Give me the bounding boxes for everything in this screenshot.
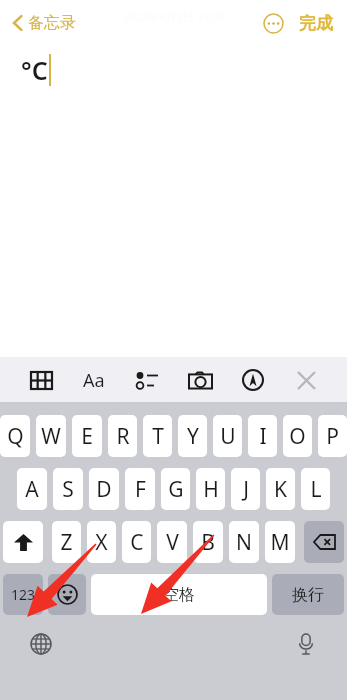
button[interactable]: J bbox=[231, 468, 260, 510]
button[interactable]: A bbox=[17, 468, 47, 510]
staticText: 123 bbox=[11, 585, 36, 604]
button[interactable]: Table bbox=[22, 361, 60, 399]
button[interactable]: Q bbox=[0, 415, 30, 457]
button[interactable]: U bbox=[213, 415, 242, 457]
button[interactable]: B bbox=[193, 521, 223, 563]
button[interactable]: N bbox=[229, 521, 259, 563]
staticText: X bbox=[95, 528, 108, 557]
button[interactable]: Z bbox=[52, 521, 81, 563]
button[interactable]: H bbox=[196, 468, 225, 510]
button[interactable]: G bbox=[161, 468, 190, 510]
button[interactable]: P bbox=[318, 415, 347, 457]
staticText: U bbox=[220, 422, 236, 451]
staticText: Z bbox=[60, 528, 73, 557]
staticText: J bbox=[243, 475, 249, 504]
staticText: S bbox=[62, 475, 74, 504]
button[interactable]: X bbox=[87, 521, 116, 563]
staticText: O bbox=[289, 422, 306, 451]
staticText: 备忘录 bbox=[28, 13, 76, 33]
staticText: C bbox=[130, 528, 144, 557]
button[interactable]: V bbox=[157, 521, 187, 563]
button[interactable]: Camera bbox=[181, 361, 219, 399]
button[interactable]: W bbox=[36, 415, 66, 457]
button[interactable]: 123 bbox=[3, 574, 43, 615]
button[interactable]: C bbox=[122, 521, 151, 563]
button[interactable]: D bbox=[89, 468, 119, 510]
staticText: D bbox=[96, 475, 112, 504]
staticText: P bbox=[326, 422, 339, 451]
button[interactable]: Checklist bbox=[128, 361, 166, 399]
staticText: L bbox=[310, 475, 322, 504]
staticText: M bbox=[270, 528, 290, 557]
staticText: 空格 bbox=[163, 585, 195, 605]
button[interactable]: Close keyboard bbox=[287, 361, 325, 399]
staticText: A bbox=[25, 475, 39, 504]
staticText: T bbox=[152, 422, 164, 451]
staticText: H bbox=[203, 475, 219, 504]
button[interactable]: 备忘录 bbox=[9, 9, 79, 37]
staticText: F bbox=[135, 475, 146, 504]
staticText: B bbox=[201, 528, 215, 557]
staticText: I bbox=[259, 422, 267, 451]
button[interactable]: E bbox=[72, 415, 102, 457]
button[interactable]: 空格 bbox=[91, 574, 267, 615]
button[interactable]: Dictation bbox=[287, 625, 325, 663]
staticText: K bbox=[274, 475, 287, 504]
staticText: V bbox=[166, 528, 179, 557]
button[interactable]: R bbox=[108, 415, 137, 457]
button[interactable]: Aa bbox=[74, 360, 114, 400]
staticText: Q bbox=[7, 422, 24, 451]
button[interactable]: Shift bbox=[3, 521, 43, 563]
button[interactable]: Emoji bbox=[48, 574, 86, 615]
button[interactable]: Markup bbox=[234, 361, 272, 399]
staticText: Aa bbox=[83, 368, 105, 393]
button[interactable]: 换行 bbox=[272, 574, 344, 615]
staticText: 完成 bbox=[299, 13, 333, 34]
button[interactable]: F bbox=[125, 468, 155, 510]
button[interactable]: O bbox=[283, 415, 312, 457]
button[interactable]: Delete bbox=[304, 521, 344, 563]
button[interactable]: M bbox=[265, 521, 295, 563]
staticText: 换行 bbox=[292, 585, 324, 605]
button[interactable]: Switch language bbox=[22, 625, 60, 663]
button[interactable]: L bbox=[301, 468, 330, 510]
button[interactable]: S bbox=[53, 468, 83, 510]
staticText: °C bbox=[21, 53, 48, 87]
staticText: E bbox=[81, 422, 93, 451]
staticText: G bbox=[168, 475, 184, 504]
staticText: R bbox=[116, 422, 130, 451]
staticText: W bbox=[41, 422, 61, 451]
button[interactable]: Y bbox=[178, 415, 207, 457]
button[interactable]: T bbox=[143, 415, 172, 457]
staticText: N bbox=[236, 528, 252, 557]
button[interactable]: I bbox=[248, 415, 277, 457]
button[interactable]: 完成 bbox=[297, 9, 335, 38]
button[interactable]: K bbox=[266, 468, 295, 510]
button[interactable]: More options bbox=[258, 8, 288, 38]
staticText: Y bbox=[187, 422, 199, 451]
